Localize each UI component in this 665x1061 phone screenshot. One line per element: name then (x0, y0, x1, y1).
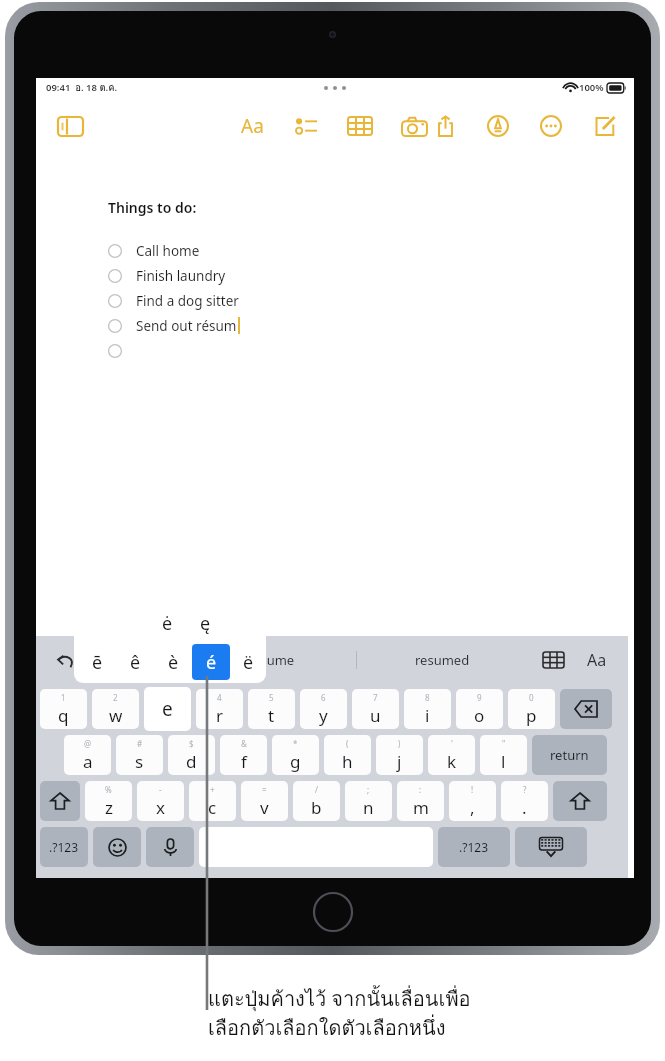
staticText: Things to do: (108, 198, 197, 217)
staticText: , (470, 796, 475, 819)
staticText: Find a dog sitter (136, 292, 239, 310)
button[interactable]: Finish laundry (108, 263, 634, 288)
button[interactable]: ė (148, 605, 186, 641)
staticText: 100% (579, 81, 604, 94)
button[interactable]: Shift (553, 781, 607, 821)
button[interactable]: 0 (508, 689, 555, 729)
staticText: c (208, 796, 217, 819)
button[interactable]: .?123 (438, 827, 510, 867)
button[interactable]: More (533, 108, 569, 144)
staticText: i (425, 704, 430, 727)
other: Home (313, 892, 353, 932)
button[interactable]: ; (345, 781, 392, 821)
staticText: & (241, 738, 247, 749)
staticText: Call home (136, 242, 200, 260)
staticText: resumed (415, 651, 470, 669)
staticText: ( (346, 738, 349, 749)
staticText: j (397, 750, 402, 773)
staticText: u (370, 704, 381, 727)
button[interactable]: Camera (396, 108, 432, 144)
button[interactable]: 4 (196, 689, 243, 729)
button[interactable]: 5 (248, 689, 295, 729)
button[interactable]: 7 (352, 689, 399, 729)
button[interactable]: Markup (480, 108, 516, 144)
button[interactable]: ! (449, 781, 496, 821)
button[interactable]: + (189, 781, 236, 821)
staticText: ' (451, 738, 453, 749)
staticText: * (293, 738, 298, 749)
button[interactable]: .?123 (40, 827, 88, 867)
button[interactable]: 6 (300, 689, 347, 729)
button[interactable]: Checklist (288, 108, 324, 144)
button[interactable]: ? (501, 781, 548, 821)
button[interactable]: Shift (40, 781, 80, 821)
button[interactable]: " (480, 735, 527, 775)
button[interactable]: Share (427, 108, 463, 144)
staticText: .?123 (459, 839, 489, 855)
button[interactable]: ē (78, 644, 116, 680)
button[interactable]: Table (342, 108, 378, 144)
button[interactable]: ę (186, 605, 224, 641)
button[interactable]: Insert table (536, 643, 570, 677)
button[interactable]: = (241, 781, 288, 821)
staticText: % (105, 784, 112, 795)
button[interactable]: / (293, 781, 340, 821)
button[interactable]: e (144, 687, 191, 731)
staticText: a (83, 750, 93, 773)
button[interactable]: New note (586, 108, 622, 144)
button[interactable]: @ (64, 735, 111, 775)
button[interactable]: $ (168, 735, 215, 775)
button[interactable]: Dictation (146, 827, 194, 867)
button[interactable]: Find a dog sitter (108, 288, 634, 313)
staticText: แตะปุ่มค้างไว้ จากนั้นเลื่อนเพื่อ เลือกต… (208, 983, 471, 1044)
staticText: ê (130, 650, 141, 675)
staticText: ë (243, 650, 254, 675)
button[interactable]: Show sidebar (50, 106, 90, 146)
button[interactable]: 8 (404, 689, 451, 729)
staticText: 0 (529, 692, 534, 703)
button[interactable]: é (192, 644, 230, 680)
staticText: ē (92, 650, 103, 675)
staticText: f (241, 750, 247, 773)
button[interactable]: return (532, 735, 607, 775)
button[interactable]: % (85, 781, 132, 821)
button[interactable]: resume (186, 643, 356, 677)
staticText: l (501, 750, 506, 773)
button[interactable]: Space (199, 827, 433, 867)
staticText: b (311, 796, 322, 819)
button[interactable]: Call home (108, 238, 634, 263)
button[interactable]: - (137, 781, 184, 821)
staticText: = (262, 784, 267, 795)
button[interactable]: * (272, 735, 319, 775)
button[interactable]: ë (230, 644, 266, 680)
button[interactable]: Emoji (93, 827, 141, 867)
staticText: : (419, 784, 422, 795)
button[interactable]: resumed (357, 643, 527, 677)
staticText: n (363, 796, 374, 819)
button[interactable]: ) (376, 735, 423, 775)
button[interactable]: 9 (456, 689, 503, 729)
staticText: Aa (587, 649, 607, 671)
button[interactable]: 1 (40, 689, 87, 729)
button[interactable]: ê (116, 644, 154, 680)
button[interactable]: # (116, 735, 163, 775)
staticText: e (162, 696, 173, 722)
button[interactable]: Undo (48, 642, 84, 678)
button[interactable]: & (220, 735, 267, 775)
button[interactable]: Delete (560, 689, 612, 729)
button[interactable]: ' (428, 735, 475, 775)
button[interactable]: Format (234, 108, 270, 144)
staticText: g (290, 750, 301, 773)
button[interactable] (108, 338, 634, 363)
staticText: Send out résum (136, 317, 237, 335)
button[interactable]: Text format (580, 643, 614, 677)
button[interactable]: : (397, 781, 444, 821)
button[interactable]: è (154, 644, 192, 680)
staticText: + (210, 784, 215, 795)
button[interactable]: 2 (92, 689, 139, 729)
button[interactable]: Send out résum (108, 313, 634, 338)
staticText: ) (398, 738, 401, 749)
staticText: ; (367, 784, 370, 795)
button[interactable]: ( (324, 735, 371, 775)
button[interactable]: Hide keyboard (515, 827, 587, 867)
